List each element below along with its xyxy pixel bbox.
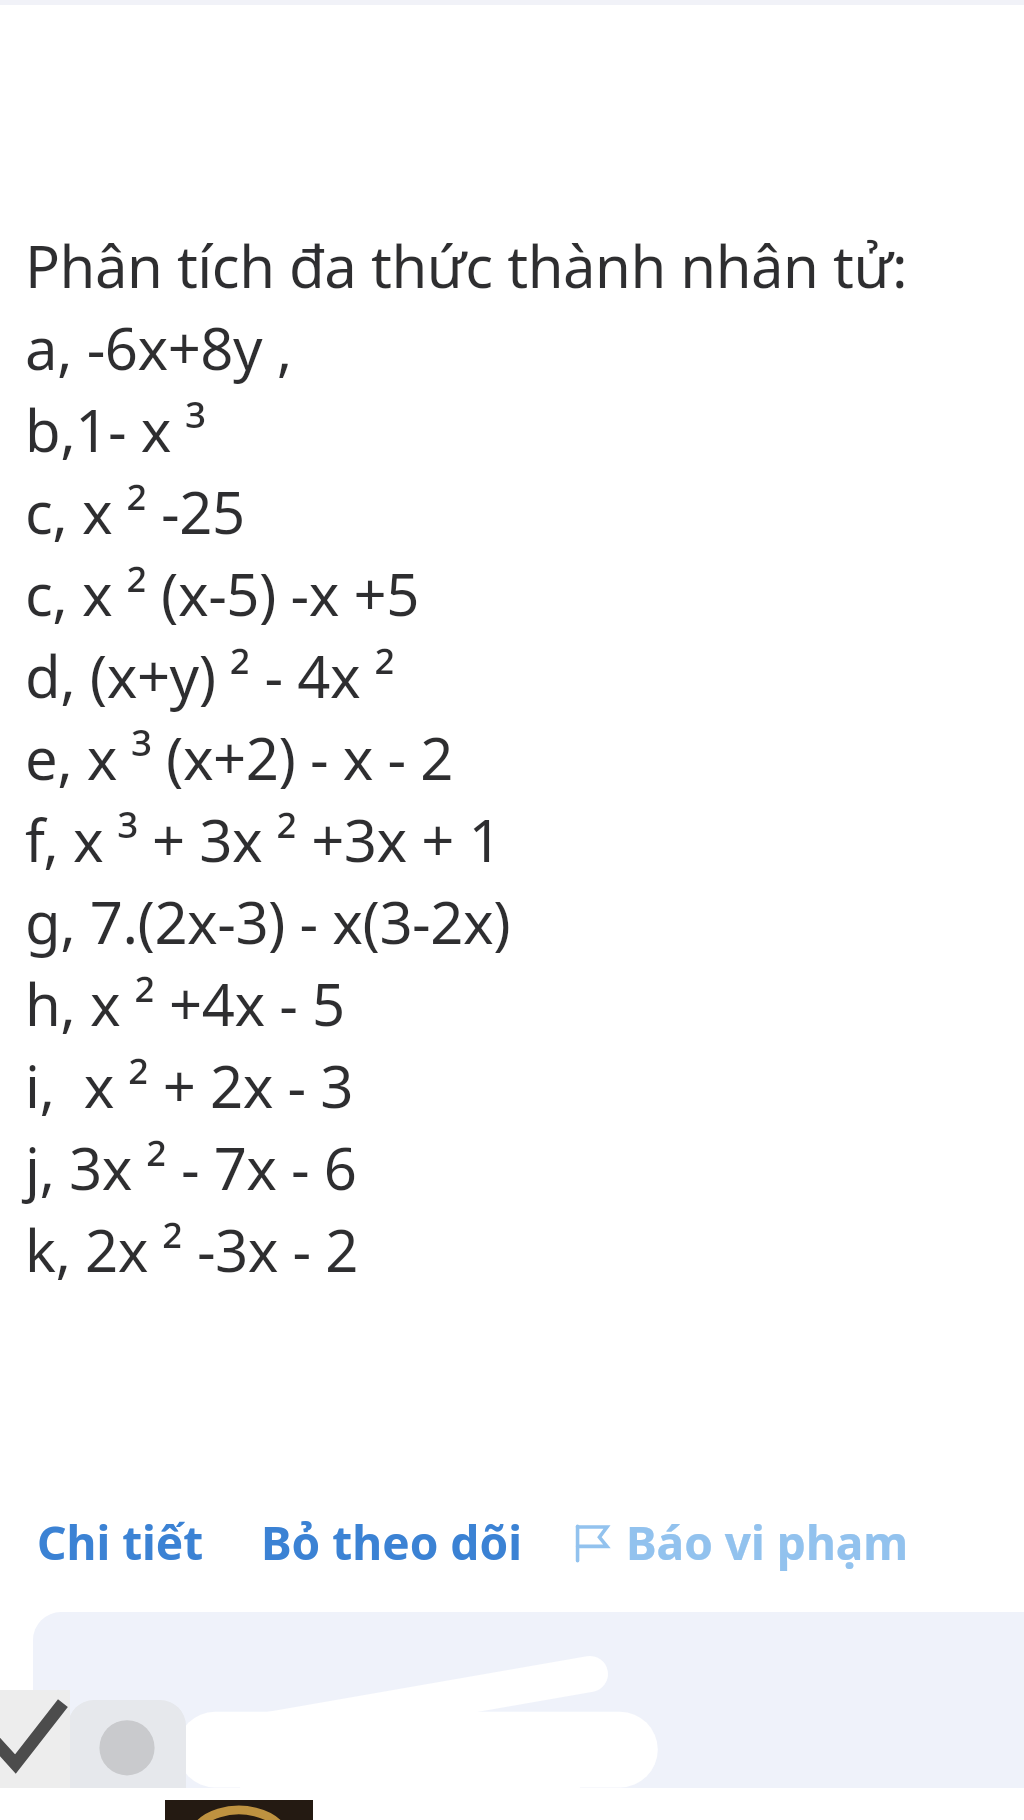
button[interactable] (68, 1700, 186, 1792)
staticText: d, (x+y) ² - 4x ² (25, 636, 395, 715)
staticText: Chi tiết (37, 1511, 204, 1574)
staticText: Báo vi phạm (626, 1511, 909, 1574)
staticText: Phân tích đa thức thành nhân tử: (25, 226, 908, 305)
staticText: e, x ³ (x+2) - x - 2 (25, 718, 453, 797)
staticText: c, x ² (x-5) -x +5 (25, 554, 419, 633)
button[interactable]: Bỏ theo dõi (261, 1511, 522, 1574)
staticText: k, 2x ² -3x - 2 (25, 1210, 358, 1289)
staticText: a, -6x+8y , (25, 308, 292, 387)
staticText: b,1- x ³ (25, 390, 206, 469)
staticText: j, 3x ² - 7x - 6 (25, 1128, 357, 1207)
other: Báo vi phạm (570, 1522, 612, 1564)
staticText: Bỏ theo dõi (261, 1511, 522, 1574)
staticText: i, x ² + 2x - 3 (25, 1046, 353, 1125)
button[interactable] (33, 1612, 1024, 1788)
button[interactable]: Chi tiết (37, 1511, 204, 1574)
button[interactable] (165, 1800, 313, 1820)
staticText: g, 7.(2x-3) - x(3-2x) (25, 882, 511, 961)
button[interactable]: Báo vi phạm (570, 1511, 909, 1574)
staticText: f, x ³ + 3x ² +3x + 1 (25, 800, 502, 879)
staticText: c, x ² -25 (25, 472, 245, 551)
staticText: h, x ² +4x - 5 (25, 964, 345, 1043)
